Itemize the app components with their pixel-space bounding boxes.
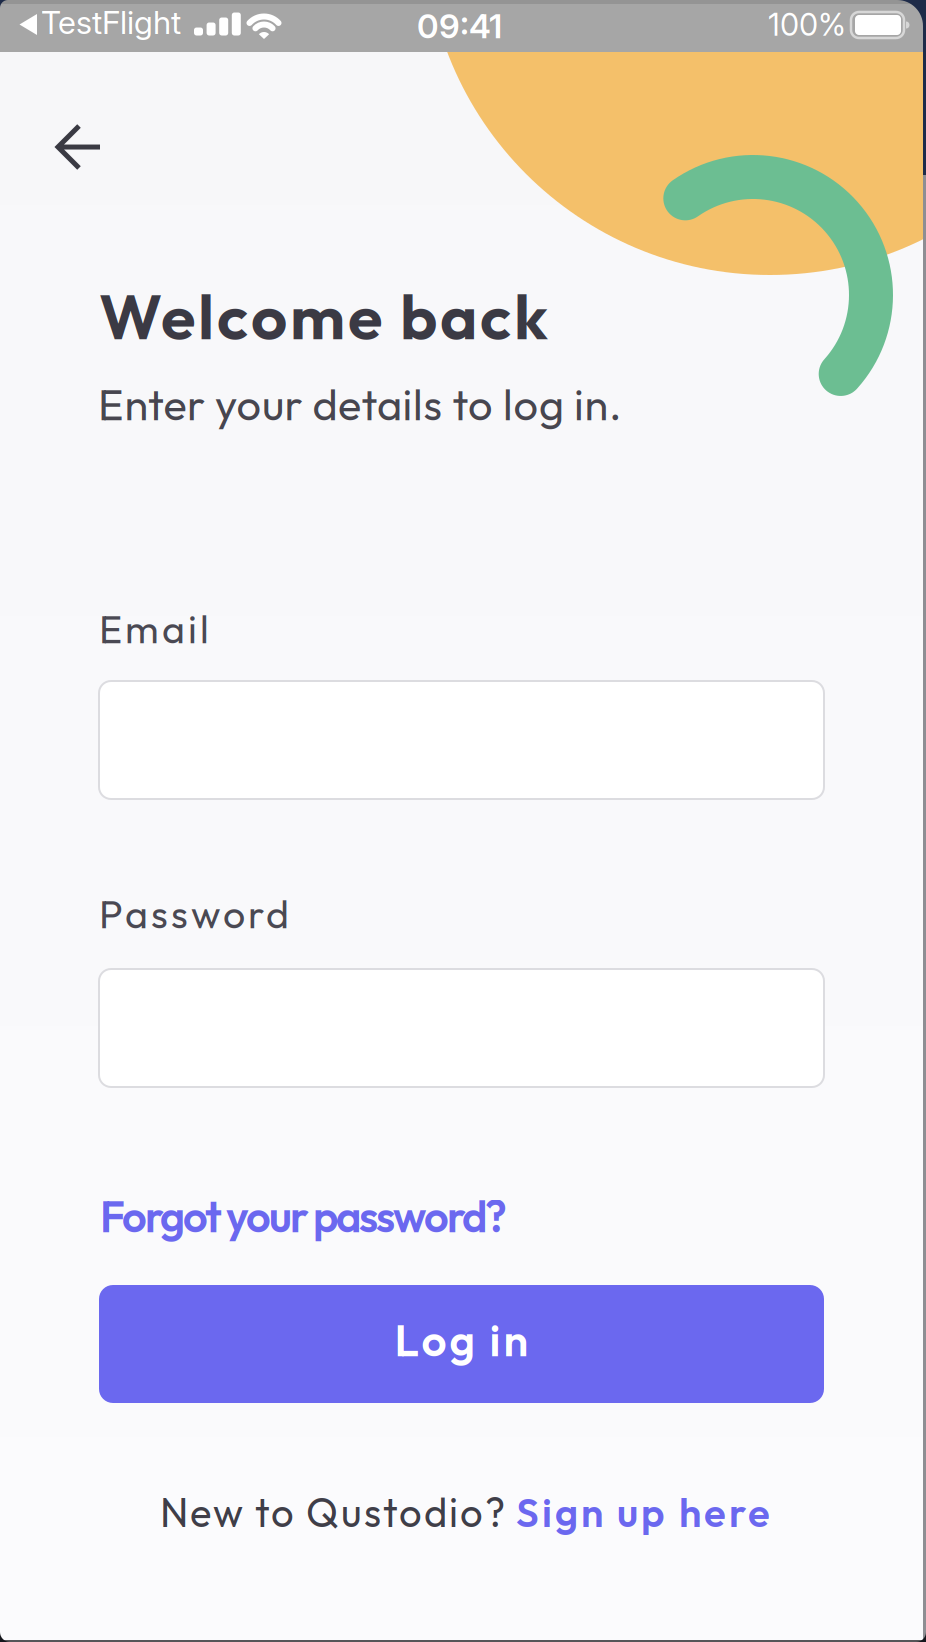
button[interactable]: Log in bbox=[99, 1285, 824, 1403]
staticText: Welcome back bbox=[99, 276, 548, 356]
button[interactable]: Sign up here bbox=[516, 1487, 770, 1537]
button[interactable]: Forgot your password? bbox=[100, 1189, 507, 1244]
button[interactable]: Email bbox=[99, 681, 824, 799]
staticText: Log in bbox=[394, 1312, 528, 1368]
staticText: TestFlight bbox=[41, 3, 181, 42]
staticText: Password bbox=[99, 889, 289, 939]
staticText: Enter your details to log in. bbox=[98, 377, 622, 432]
staticText: Sign up here bbox=[516, 1487, 770, 1537]
button[interactable]: Back bbox=[55, 123, 103, 171]
staticText: Forgot your password? bbox=[100, 1189, 507, 1244]
staticText: 09:41 bbox=[417, 6, 502, 46]
button[interactable]: Password bbox=[99, 969, 824, 1087]
staticText: New to Qustodio? bbox=[160, 1487, 505, 1537]
staticText: Email bbox=[99, 604, 209, 654]
staticText: 100% bbox=[768, 6, 846, 43]
